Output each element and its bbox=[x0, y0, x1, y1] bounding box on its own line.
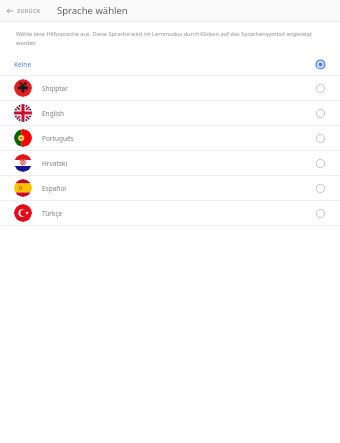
button[interactable]: Select bbox=[312, 155, 328, 171]
staticText: English bbox=[42, 109, 65, 118]
button[interactable]: Hrvatski bbox=[0, 151, 340, 175]
button[interactable]: ZURÜCK bbox=[0, 0, 47, 21]
button[interactable]: Español bbox=[0, 176, 340, 200]
staticText: ZURÜCK bbox=[17, 7, 41, 14]
button[interactable]: Select bbox=[312, 105, 328, 121]
button[interactable]: English bbox=[0, 101, 340, 125]
button[interactable]: Select bbox=[312, 205, 328, 221]
staticText: Español bbox=[42, 184, 66, 193]
staticText: Wähle eine Hilfssprache aus. Diese Sprac… bbox=[16, 30, 326, 47]
button[interactable]: Select bbox=[312, 180, 328, 196]
staticText: Sprache wählen bbox=[57, 4, 128, 17]
button[interactable]: Select bbox=[312, 80, 328, 96]
button[interactable]: Selected bbox=[312, 56, 328, 72]
staticText: Português bbox=[42, 134, 74, 143]
staticText: Türkçe bbox=[42, 209, 63, 218]
button[interactable]: Keine bbox=[0, 53, 340, 75]
button[interactable]: Select bbox=[312, 130, 328, 146]
button[interactable]: Türkçe bbox=[0, 201, 340, 225]
staticText: Shqiptar bbox=[42, 84, 68, 93]
button[interactable]: Shqiptar bbox=[0, 76, 340, 100]
staticText: Hrvatski bbox=[42, 159, 68, 168]
staticText: Keine bbox=[14, 60, 32, 69]
button[interactable]: Português bbox=[0, 126, 340, 150]
